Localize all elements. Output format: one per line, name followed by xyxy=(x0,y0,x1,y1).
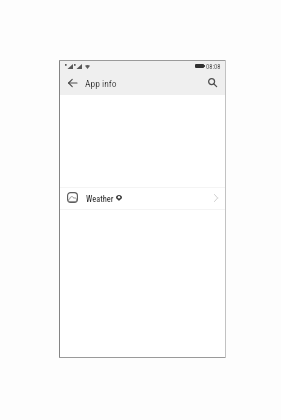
staticText: Weather xyxy=(86,194,114,204)
button[interactable]: Weather xyxy=(59,187,226,210)
staticText: 08:08 xyxy=(206,63,221,71)
button[interactable]: Back xyxy=(64,75,80,91)
button[interactable]: Search xyxy=(204,74,220,90)
staticText: App info xyxy=(85,78,117,89)
